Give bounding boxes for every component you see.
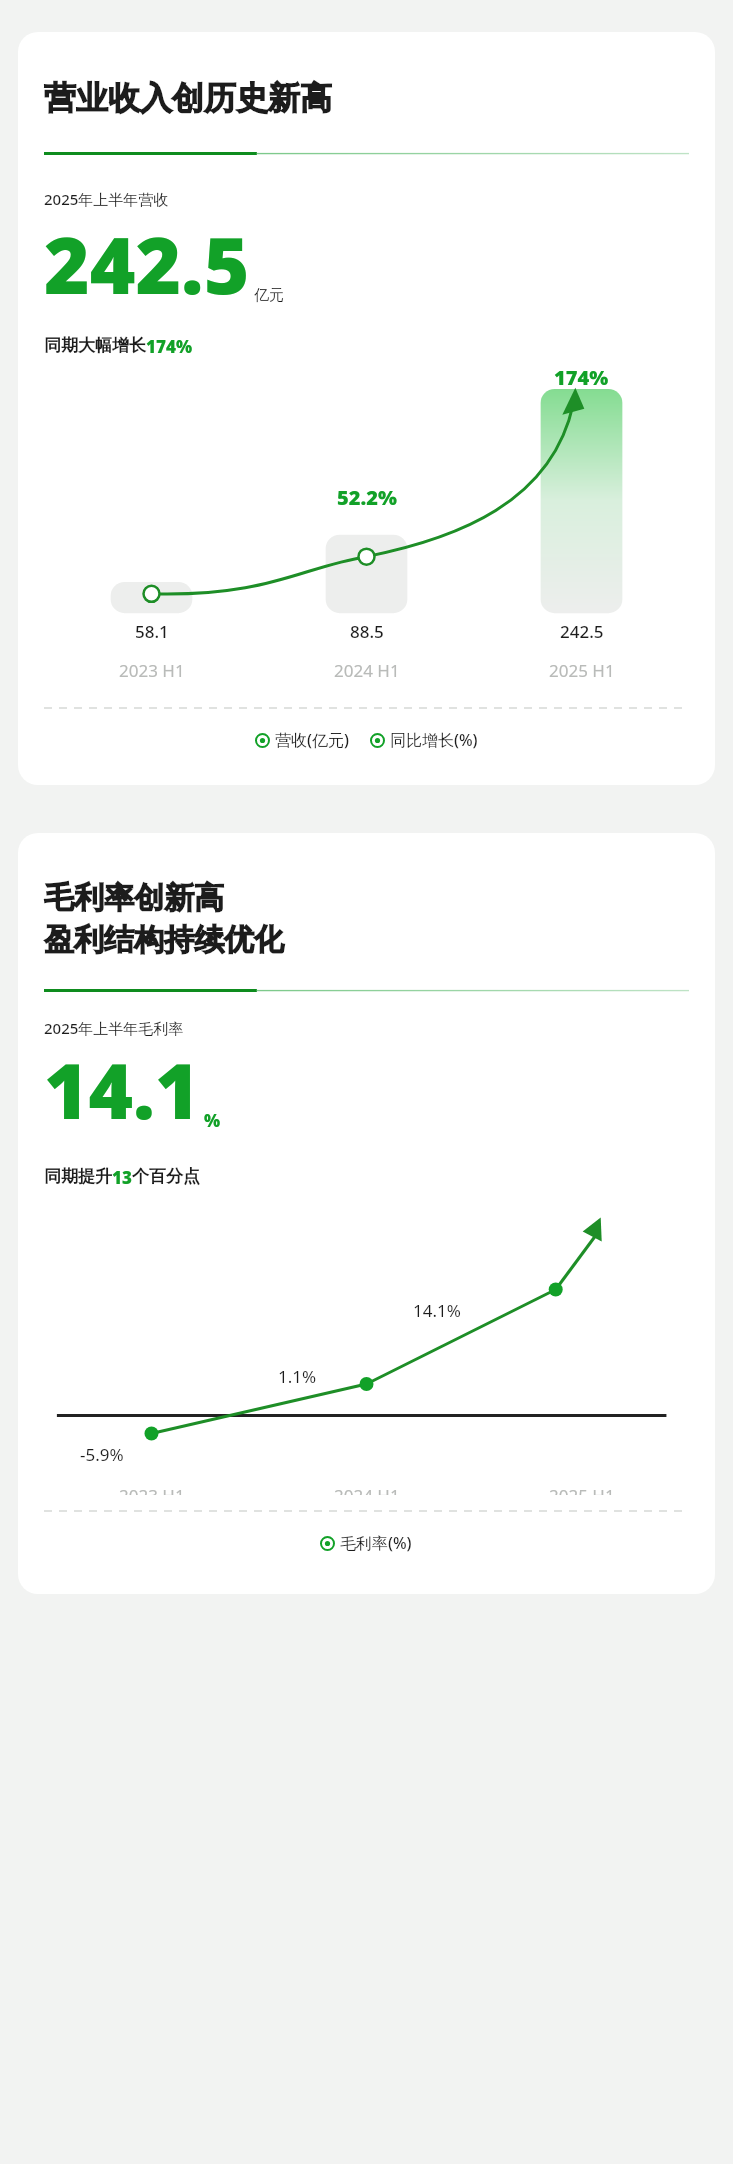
staticText: 242.5 <box>44 211 250 317</box>
staticText: 1.1% <box>278 1365 317 1388</box>
button[interactable]: 营收(亿元) <box>256 729 349 751</box>
staticText: 2024 H1 <box>334 1484 400 1495</box>
staticText: 88.5 <box>350 620 384 643</box>
staticText: -5.9% <box>80 1443 124 1466</box>
staticText: 营收(亿元) <box>275 729 349 751</box>
staticText: 2025年上半年毛利率 <box>44 1018 184 1038</box>
staticText: 2023 H1 <box>119 659 185 682</box>
staticText: 2024 H1 <box>334 659 400 682</box>
staticText: 13 <box>112 1166 132 1189</box>
staticText: % <box>204 1109 221 1132</box>
staticText: 亿元 <box>254 286 284 305</box>
button[interactable]: 毛利率(%) <box>321 1532 412 1554</box>
staticText: 174% <box>146 335 193 358</box>
button[interactable]: 同比增长(%) <box>371 729 478 751</box>
staticText: 同期提升 <box>44 1166 112 1187</box>
staticText: 同期大幅增长 <box>44 335 146 356</box>
staticText: 2025 H1 <box>549 659 615 682</box>
staticText: 58.1 <box>135 620 169 643</box>
staticText: 同比增长(%) <box>390 729 478 751</box>
staticText: 14.1 <box>44 1038 200 1142</box>
staticText: 174% <box>554 364 609 391</box>
staticText: 盈利结构持续优化 <box>44 921 284 959</box>
staticText: 营业收入创历史新高 <box>44 78 332 118</box>
staticText: 毛利率(%) <box>340 1532 412 1554</box>
staticText: 52.2% <box>337 484 397 511</box>
staticText: 2025 H1 <box>549 1484 615 1495</box>
staticText: 14.1% <box>413 1299 461 1322</box>
staticText: 个百分点 <box>132 1166 200 1187</box>
button[interactable]: 营业收入创历史新高 <box>18 32 715 785</box>
button[interactable]: 毛利率创新高 <box>18 833 715 1594</box>
staticText: 毛利率创新高 <box>44 879 224 917</box>
staticText: 2023 H1 <box>119 1484 185 1495</box>
staticText: 242.5 <box>560 620 604 643</box>
staticText: 2025年上半年营收 <box>44 189 169 209</box>
